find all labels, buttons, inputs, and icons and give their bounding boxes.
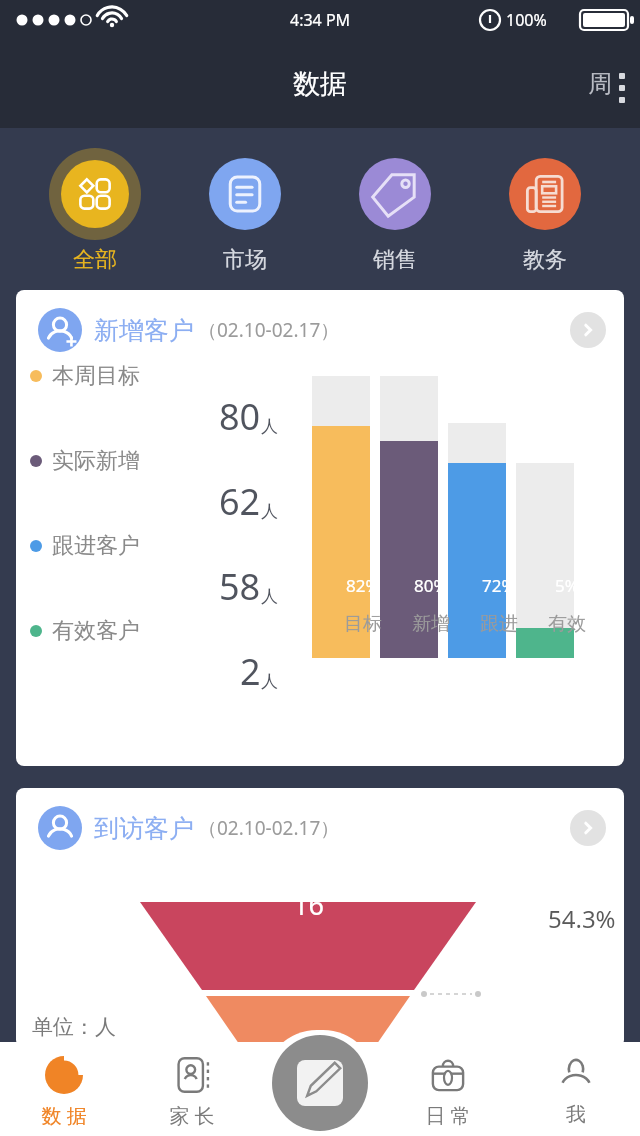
staticText: 5% bbox=[555, 574, 579, 597]
staticText: 目标 bbox=[344, 612, 382, 636]
button[interactable]: 教务 bbox=[490, 148, 600, 274]
button[interactable]: 销售 bbox=[340, 148, 450, 274]
staticText: 全部 bbox=[73, 246, 117, 274]
button[interactable]: 新增客户 bbox=[16, 290, 624, 766]
button[interactable]: 全部 bbox=[40, 148, 150, 274]
button[interactable]: 数 据 bbox=[0, 1042, 128, 1136]
button[interactable]: 周 bbox=[582, 63, 632, 105]
staticText: 跟进 bbox=[480, 612, 518, 636]
staticText: 周 bbox=[588, 69, 612, 99]
button[interactable]: 到访客户 bbox=[16, 788, 624, 1048]
staticText: 72% bbox=[482, 574, 516, 597]
staticText: 单位：人 bbox=[32, 1014, 116, 1040]
staticText: 80% bbox=[414, 574, 448, 597]
staticText: 有效客户 bbox=[52, 617, 140, 645]
button[interactable]: 家 长 bbox=[128, 1042, 256, 1136]
staticText: 16 bbox=[293, 886, 324, 923]
staticText: 新增客户 bbox=[94, 315, 194, 346]
staticText: 人 bbox=[261, 501, 278, 522]
staticText: 新增 bbox=[412, 612, 450, 636]
staticText: 到访客户 bbox=[94, 813, 194, 844]
staticText: 有效 bbox=[548, 612, 586, 636]
staticText: 100% bbox=[506, 9, 547, 31]
staticText: 教务 bbox=[523, 246, 567, 274]
button[interactable]: 日 常 bbox=[384, 1042, 512, 1136]
staticText: 62 bbox=[219, 477, 261, 526]
staticText: 销售 bbox=[373, 246, 417, 274]
staticText: 4:34 PM bbox=[290, 9, 351, 31]
button[interactable]: 查看详情 bbox=[570, 312, 606, 348]
staticText: 市场 bbox=[223, 246, 267, 274]
staticText: 数据 bbox=[293, 67, 347, 101]
staticText: 人 bbox=[261, 586, 278, 607]
staticText: 80 bbox=[219, 392, 261, 441]
staticText: 54.3% bbox=[548, 902, 616, 935]
staticText: 2 bbox=[240, 647, 261, 696]
staticText: 58 bbox=[219, 562, 261, 611]
staticText: 实际新增 bbox=[52, 447, 140, 475]
staticText: 人 bbox=[261, 671, 278, 692]
staticText: 我 bbox=[566, 1102, 586, 1127]
staticText: 日 常 bbox=[425, 1102, 471, 1129]
button[interactable]: 市场 bbox=[190, 148, 300, 274]
staticText: 本周目标 bbox=[52, 362, 140, 390]
button[interactable]: 我 bbox=[512, 1042, 640, 1136]
button[interactable]: 查看详情 bbox=[570, 810, 606, 846]
staticText: 跟进客户 bbox=[52, 532, 140, 560]
staticText: 数 据 bbox=[41, 1102, 87, 1129]
staticText: 家 长 bbox=[169, 1102, 215, 1129]
staticText: 人 bbox=[261, 416, 278, 437]
staticText: 82% bbox=[346, 574, 380, 597]
staticText: （02.10-02.17） bbox=[198, 317, 340, 343]
button[interactable]: 新建 bbox=[272, 1035, 368, 1131]
staticText: （02.10-02.17） bbox=[198, 815, 340, 841]
